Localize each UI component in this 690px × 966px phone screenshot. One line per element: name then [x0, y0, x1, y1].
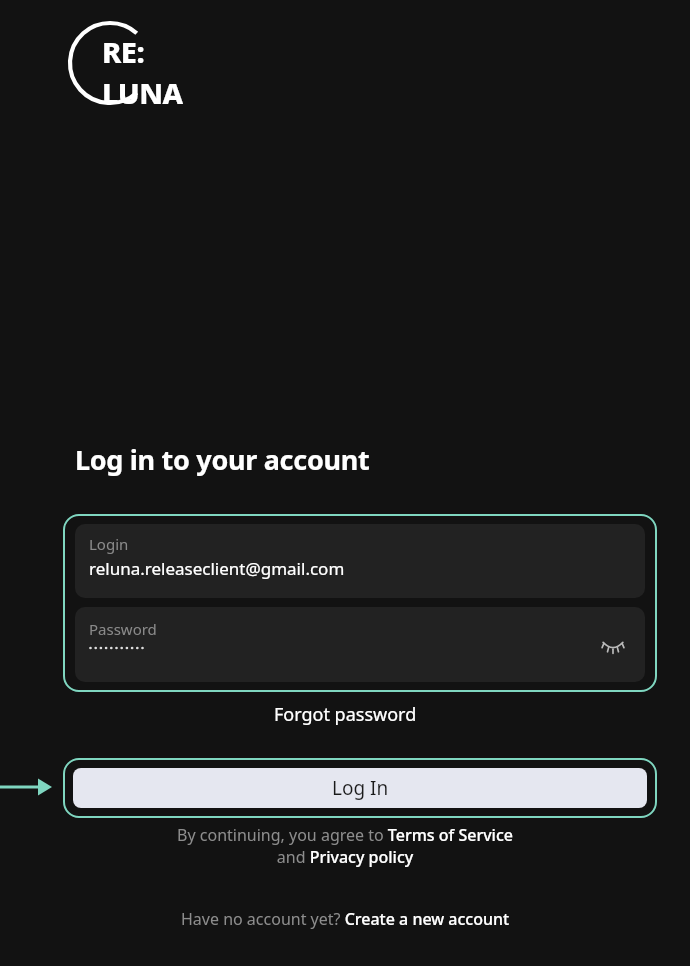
staticText: Have no account yet? Create a new accoun…	[181, 908, 510, 930]
button[interactable]: Have no account yet? Create a new accoun…	[181, 908, 510, 930]
staticText: Login	[89, 534, 129, 554]
staticText: Log in to your account	[75, 441, 370, 478]
staticText: Forgot password	[274, 702, 417, 727]
staticText: reluna.releaseclient@gmail.com	[89, 557, 345, 580]
button[interactable]: Password	[75, 607, 645, 682]
staticText: Log In	[332, 775, 389, 801]
button[interactable]: Login	[75, 524, 645, 598]
button[interactable]: Log In	[73, 768, 647, 808]
button[interactable]: Show password	[593, 625, 633, 665]
button[interactable]: Forgot password	[270, 698, 421, 731]
staticText: RE:	[102, 32, 145, 71]
staticText: Password	[89, 619, 157, 639]
staticText: By continuing, you agree to Terms of Ser…	[177, 824, 513, 868]
staticText: LUNA	[102, 73, 183, 112]
button[interactable]: By continuing, you agree to Terms of Ser…	[177, 824, 513, 868]
